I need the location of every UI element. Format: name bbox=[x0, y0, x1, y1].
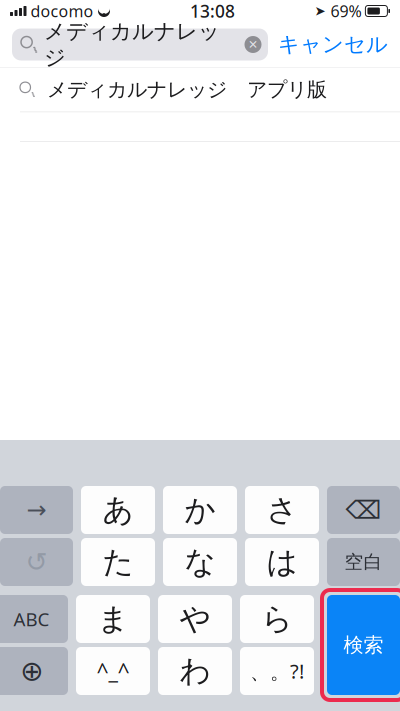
staticText: ➤ bbox=[314, 3, 325, 18]
button[interactable]: Delete bbox=[327, 486, 400, 534]
button[interactable]: Switch keyboard bbox=[0, 647, 68, 695]
staticText: た bbox=[102, 543, 133, 581]
staticText: ✕ bbox=[248, 38, 258, 51]
staticText: あ bbox=[102, 491, 133, 529]
staticText: ら bbox=[261, 600, 292, 638]
button[interactable]: ABC bbox=[0, 595, 68, 643]
button[interactable]: ^_^ bbox=[76, 647, 150, 695]
button[interactable]: わ bbox=[158, 647, 232, 695]
button[interactable]: Undo bbox=[0, 538, 73, 586]
button[interactable]: 検索 bbox=[327, 595, 400, 695]
staticText: さ bbox=[266, 491, 297, 529]
staticText: 13:08 bbox=[190, 0, 235, 22]
button[interactable]: 空白 bbox=[327, 538, 400, 586]
button[interactable]: Next candidate bbox=[0, 486, 73, 534]
staticText: メディカルナレッジ bbox=[44, 18, 220, 71]
button[interactable]: Clear text bbox=[238, 28, 268, 60]
staticText: docomo bbox=[26, 0, 93, 22]
staticText: や bbox=[179, 600, 210, 638]
staticText: キャンセル bbox=[278, 31, 388, 58]
staticText: ^_^ bbox=[96, 657, 129, 685]
button[interactable]: ら bbox=[240, 595, 314, 643]
staticText: 空白 bbox=[344, 550, 382, 573]
staticText: 69% bbox=[326, 0, 361, 22]
staticText: わ bbox=[179, 652, 210, 690]
staticText: は bbox=[266, 543, 297, 581]
button[interactable]: や bbox=[158, 595, 232, 643]
staticText: ⌫ bbox=[345, 496, 381, 524]
staticText: 、。?! bbox=[250, 658, 304, 684]
staticText: な bbox=[184, 543, 215, 581]
button[interactable]: さ bbox=[245, 486, 319, 534]
staticText: → bbox=[26, 496, 46, 524]
button[interactable]: た bbox=[81, 538, 155, 586]
button[interactable]: メディカルナレッジ アプリ版 bbox=[0, 68, 400, 112]
staticText: 検索 bbox=[343, 633, 383, 657]
button[interactable]: は bbox=[245, 538, 319, 586]
staticText: メディカルナレッジ アプリ版 bbox=[47, 77, 327, 102]
button[interactable]: 、。?! bbox=[240, 647, 314, 695]
button[interactable]: か bbox=[163, 486, 237, 534]
staticText: ⊕ bbox=[20, 655, 43, 687]
button[interactable]: な bbox=[163, 538, 237, 586]
staticText: ま bbox=[97, 600, 128, 638]
staticText: か bbox=[184, 491, 215, 529]
button[interactable]: ま bbox=[76, 595, 150, 643]
button[interactable]: キャンセル bbox=[268, 26, 388, 62]
staticText: ↺ bbox=[25, 547, 47, 577]
button[interactable]: あ bbox=[81, 486, 155, 534]
staticText: ABC bbox=[13, 607, 49, 631]
